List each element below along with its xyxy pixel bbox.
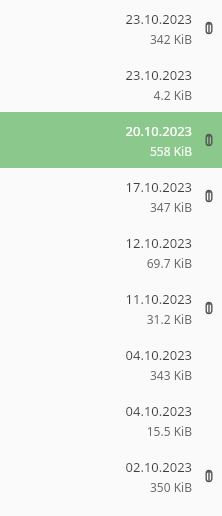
staticText: 11.10.2023 xyxy=(125,290,192,308)
button[interactable]: 23.10.2023 xyxy=(0,0,222,56)
staticText: 23.10.2023 xyxy=(125,10,192,28)
button[interactable]: 04.10.2023 xyxy=(0,392,222,448)
staticText: 69.7 KiB xyxy=(146,255,192,271)
button[interactable]: 23.10.2023 xyxy=(0,56,222,112)
staticText: 350 KiB xyxy=(149,479,192,495)
other: Attachment xyxy=(204,21,214,35)
other: Attachment xyxy=(204,133,214,147)
staticText: 23.10.2023 xyxy=(125,66,192,84)
staticText: 02.10.2023 xyxy=(125,458,192,476)
button[interactable]: 02.10.2023 xyxy=(0,448,222,504)
staticText: 04.10.2023 xyxy=(125,402,192,420)
button[interactable]: 20.10.2023 xyxy=(0,112,222,168)
staticText: 558 KiB xyxy=(149,143,192,159)
staticText: 12.10.2023 xyxy=(125,234,192,252)
staticText: 15.5 KiB xyxy=(146,423,192,439)
button[interactable]: 17.10.2023 xyxy=(0,168,222,224)
staticText: 347 KiB xyxy=(149,199,192,215)
other: Attachment xyxy=(204,189,214,203)
other: Attachment xyxy=(204,469,214,483)
staticText: 04.10.2023 xyxy=(125,346,192,364)
staticText: 20.10.2023 xyxy=(125,122,192,140)
staticText: 4.2 KiB xyxy=(153,87,192,103)
staticText: 343 KiB xyxy=(149,367,192,383)
button[interactable]: 04.10.2023 xyxy=(0,336,222,392)
button[interactable]: 12.10.2023 xyxy=(0,224,222,280)
other: Attachment xyxy=(204,301,214,315)
staticText: 342 KiB xyxy=(149,31,192,47)
button[interactable]: 11.10.2023 xyxy=(0,280,222,336)
staticText: 17.10.2023 xyxy=(125,178,192,196)
staticText: 31.2 KiB xyxy=(146,311,192,327)
